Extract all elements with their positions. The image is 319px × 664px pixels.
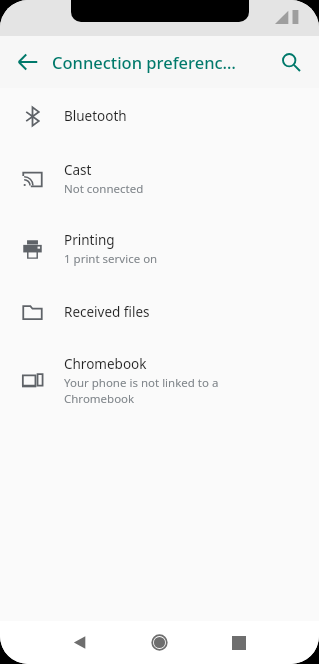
staticText: 1 print service on	[64, 251, 158, 267]
button[interactable]: Home	[137, 621, 181, 664]
staticText: Printing	[64, 231, 115, 249]
button[interactable]: Chromebook	[0, 340, 319, 420]
staticText: Not connected	[64, 181, 144, 197]
button[interactable]: Cast	[0, 144, 319, 214]
button[interactable]: Back	[8, 42, 48, 82]
staticText: Connection preferenc…	[52, 51, 271, 73]
staticText: Cast	[64, 161, 92, 179]
button[interactable]: Printing	[0, 214, 319, 284]
button[interactable]: Back	[58, 621, 102, 664]
staticText: Chromebook	[64, 355, 147, 373]
button[interactable]: Bluetooth	[0, 88, 319, 144]
button[interactable]: Recent apps	[217, 621, 261, 664]
staticText: Received files	[64, 303, 150, 321]
staticText: Bluetooth	[64, 107, 127, 125]
button[interactable]: Received files	[0, 284, 319, 340]
button[interactable]: Search	[271, 42, 311, 82]
staticText: Your phone is not linked to a Chromebook	[64, 375, 219, 406]
